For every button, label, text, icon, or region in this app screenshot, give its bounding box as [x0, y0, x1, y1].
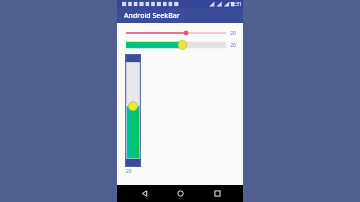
- button[interactable]: Home: [170, 185, 190, 202]
- button[interactable]: 20: [126, 39, 240, 51]
- button[interactable]: Recent apps: [207, 185, 227, 202]
- staticText: 20: [230, 42, 236, 49]
- staticText: 20: [230, 30, 236, 37]
- button[interactable]: Vertical seek bar: [125, 54, 145, 175]
- button[interactable]: Back: [134, 185, 154, 202]
- button[interactable]: 20: [126, 28, 240, 38]
- staticText: Android SeekBar: [124, 11, 180, 21]
- staticText: 20: [126, 168, 132, 175]
- staticText: 11:31: [230, 1, 242, 7]
- button[interactable]: Android SeekBar: [117, 8, 243, 23]
